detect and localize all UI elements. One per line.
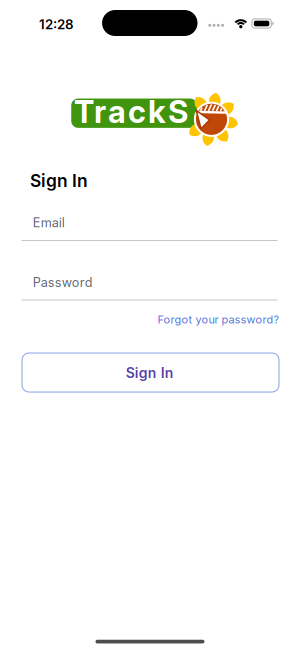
staticText: Sign In	[126, 364, 174, 381]
staticText: TrackS	[74, 93, 188, 131]
staticText: Sign In	[30, 170, 88, 191]
staticText: Forgot your password?	[157, 313, 279, 326]
staticText: Email	[33, 215, 65, 230]
staticText: Password	[33, 275, 93, 290]
staticText: 12:28	[39, 16, 74, 32]
